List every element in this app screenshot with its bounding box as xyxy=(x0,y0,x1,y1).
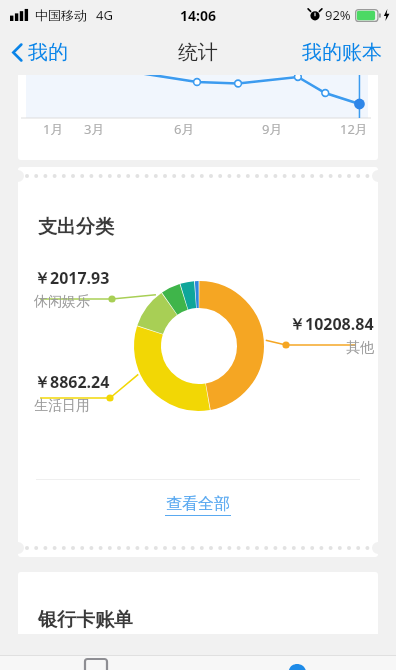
staticText: 中国移动 xyxy=(35,7,87,23)
staticText: 6月 xyxy=(174,120,195,138)
staticText: 92% xyxy=(325,6,351,24)
staticText: 支出分类 xyxy=(38,215,114,239)
button[interactable]: 我的账本 xyxy=(288,34,396,71)
staticText: 生活日用 xyxy=(34,397,90,415)
staticText: ￥2017.93 xyxy=(34,267,110,289)
staticText: 银行卡账单 xyxy=(38,608,133,632)
staticText: 1月 xyxy=(43,120,64,138)
staticText: 3月 xyxy=(84,120,105,138)
staticText: 12月 xyxy=(340,120,368,138)
staticText: 4G xyxy=(96,6,113,24)
button[interactable]: 我的 xyxy=(284,658,310,670)
staticText: ￥10208.84 xyxy=(289,313,374,335)
staticText: 其他 xyxy=(346,339,374,357)
staticText: 统计 xyxy=(178,40,218,65)
button[interactable]: 我的 xyxy=(0,34,80,71)
staticText: ￥8862.24 xyxy=(34,371,110,393)
staticText: 我的账本 xyxy=(302,40,382,65)
staticText: 查看全部 xyxy=(166,494,230,514)
staticText: 我的 xyxy=(28,40,68,65)
staticText: 14:06 xyxy=(180,6,216,25)
button[interactable]: 查看全部 xyxy=(18,480,378,529)
button[interactable]: 账本 xyxy=(82,658,116,670)
staticText: 休闲娱乐 xyxy=(34,293,90,311)
staticText: 9月 xyxy=(262,120,283,138)
